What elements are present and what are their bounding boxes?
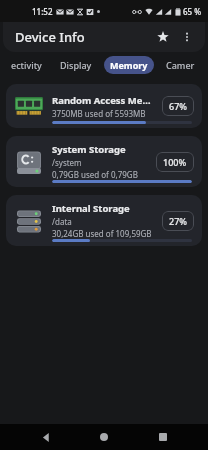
staticText: Display [60, 59, 92, 71]
staticText: Camera [166, 59, 199, 71]
button[interactable]: Memory [104, 56, 154, 74]
button[interactable]: 27% [162, 211, 194, 231]
staticText: 30,24GB used of 109,59GB [52, 228, 152, 239]
staticText: 27% [169, 215, 187, 227]
button[interactable]: Random Access Memory [6, 84, 202, 128]
button[interactable]: 100% [156, 152, 194, 172]
staticText: 67% [169, 100, 187, 112]
button[interactable]: Internal Storage [6, 195, 202, 246]
button[interactable]: ectivity [5, 56, 48, 74]
button[interactable]: Recent apps [150, 424, 176, 450]
staticText: System Storage [52, 143, 126, 156]
staticText: 100% [163, 156, 187, 168]
button[interactable]: System Storage [6, 136, 202, 187]
button[interactable]: Display [54, 56, 98, 74]
button[interactable]: Back [33, 424, 59, 450]
staticText: Memory [110, 59, 148, 71]
button[interactable]: More options [175, 25, 199, 49]
staticText: Device Info [15, 28, 85, 46]
button[interactable]: Camera [160, 56, 205, 74]
staticText: Internal Storage [52, 202, 130, 215]
button[interactable]: Favorite [151, 25, 175, 49]
staticText: /data [52, 216, 72, 227]
staticText: 11:52 [32, 6, 53, 17]
button[interactable]: Home [91, 424, 117, 450]
staticText: Random Access Memory [52, 94, 156, 107]
button[interactable]: 67% [162, 96, 194, 116]
staticText: 65 % [183, 6, 202, 17]
staticText: ectivity [11, 59, 42, 71]
staticText: 0,79GB used of 0,79GB [52, 169, 138, 180]
staticText: 3750MB used of 5593MB [52, 108, 146, 119]
staticText: /system [52, 157, 82, 168]
